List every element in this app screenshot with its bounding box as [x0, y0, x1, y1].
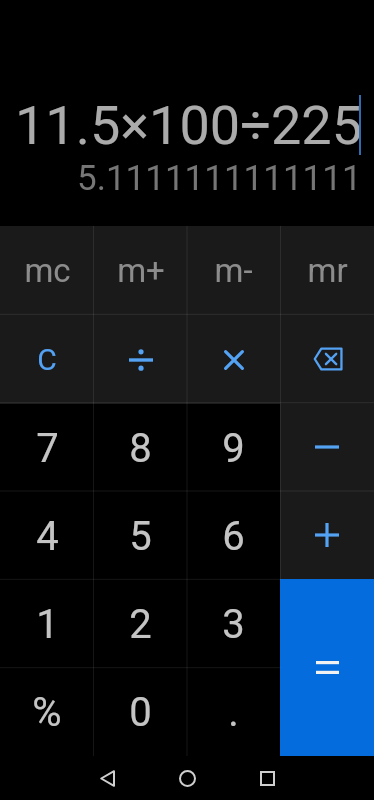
- button[interactable]: Recent apps: [227, 756, 307, 800]
- button[interactable]: Minus: [280, 403, 374, 491]
- button[interactable]: m-: [187, 226, 280, 315]
- staticText: 3: [222, 601, 245, 648]
- button[interactable]: m+: [94, 226, 187, 315]
- button[interactable]: Plus: [280, 491, 374, 579]
- button[interactable]: 3: [187, 580, 280, 668]
- button[interactable]: 0: [94, 668, 187, 756]
- button[interactable]: Memory recall: [280, 226, 374, 315]
- staticText: 4: [36, 513, 59, 560]
- staticText: m+: [117, 251, 165, 290]
- button[interactable]: 7: [0, 404, 94, 492]
- staticText: 11.5×100÷225: [15, 94, 363, 157]
- staticText: mc: [24, 251, 71, 290]
- staticText: C: [37, 342, 57, 377]
- button[interactable]: .: [187, 668, 280, 756]
- button[interactable]: 6: [187, 492, 280, 580]
- staticText: 0: [129, 689, 152, 736]
- button[interactable]: 2: [94, 580, 187, 668]
- button[interactable]: Divide: [94, 315, 187, 404]
- staticText: 5: [129, 513, 152, 560]
- button[interactable]: 4: [0, 492, 94, 580]
- button[interactable]: %: [0, 668, 94, 756]
- staticText: 5.1111111111111: [77, 158, 362, 199]
- staticText: mr: [307, 251, 348, 290]
- staticText: 7: [36, 425, 59, 472]
- staticText: .: [228, 689, 239, 736]
- button[interactable]: 9: [187, 404, 280, 492]
- button[interactable]: 8: [94, 404, 187, 492]
- button[interactable]: Home: [147, 756, 227, 800]
- button[interactable]: 1: [0, 580, 94, 668]
- button[interactable]: 5: [94, 492, 187, 580]
- staticText: %: [32, 689, 62, 736]
- staticText: m-: [214, 251, 253, 290]
- staticText: 9: [222, 425, 245, 472]
- button[interactable]: Backspace: [280, 315, 374, 403]
- button[interactable]: Multiply: [187, 315, 280, 404]
- button[interactable]: mc: [0, 226, 94, 315]
- button[interactable]: Equals: [280, 579, 374, 756]
- staticText: 8: [129, 425, 152, 472]
- staticText: 6: [222, 513, 245, 560]
- button[interactable]: Back: [67, 756, 147, 800]
- button[interactable]: C: [0, 315, 94, 404]
- staticText: 2: [129, 601, 152, 648]
- staticText: 1: [36, 601, 59, 648]
